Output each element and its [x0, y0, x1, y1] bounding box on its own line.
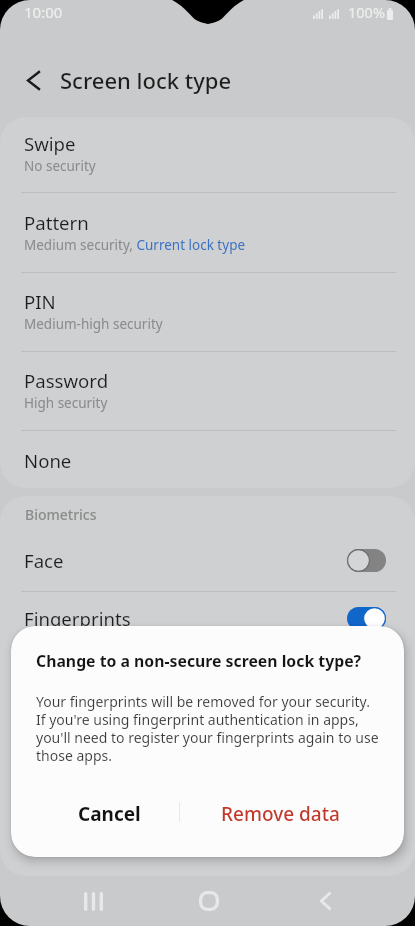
staticText: Remove data [221, 801, 340, 827]
button[interactable]: Remove data [180, 786, 380, 841]
button[interactable]: Password [0, 367, 415, 413]
button[interactable]: Fingerprints [0, 603, 415, 633]
staticText: High security [24, 394, 108, 412]
staticText: Biometrics [25, 505, 97, 524]
button[interactable]: Cancel [25, 786, 193, 841]
staticText: Medium-high security [24, 315, 163, 333]
button[interactable]: Back [304, 880, 346, 922]
staticText: Cancel [78, 801, 141, 827]
button[interactable]: None [0, 447, 415, 474]
staticText: None [24, 448, 72, 473]
staticText: Screen lock type [60, 65, 232, 95]
button[interactable]: Face [0, 545, 415, 575]
staticText: Medium security, Current lock type [24, 236, 246, 254]
button[interactable]: PIN [0, 288, 415, 334]
staticText: No security [24, 157, 96, 175]
staticText: 10:00 [24, 2, 63, 22]
staticText: 100% [348, 2, 385, 22]
staticText: Change to a non-secure screen lock type? [36, 650, 362, 672]
staticText: PIN [24, 289, 56, 314]
staticText: Pattern [24, 210, 89, 235]
button[interactable]: Recent apps [72, 880, 114, 922]
staticText: Fingerprints [24, 606, 347, 631]
button[interactable]: Pattern [0, 209, 415, 255]
button[interactable]: Home [188, 880, 230, 922]
button[interactable]: Swipe [0, 130, 415, 176]
staticText: Password [24, 368, 109, 393]
staticText: Swipe [24, 131, 76, 156]
staticText: Your fingerprints will be removed for yo… [36, 692, 381, 765]
button[interactable]: Navigate up [15, 62, 51, 98]
staticText: Face [24, 548, 347, 573]
